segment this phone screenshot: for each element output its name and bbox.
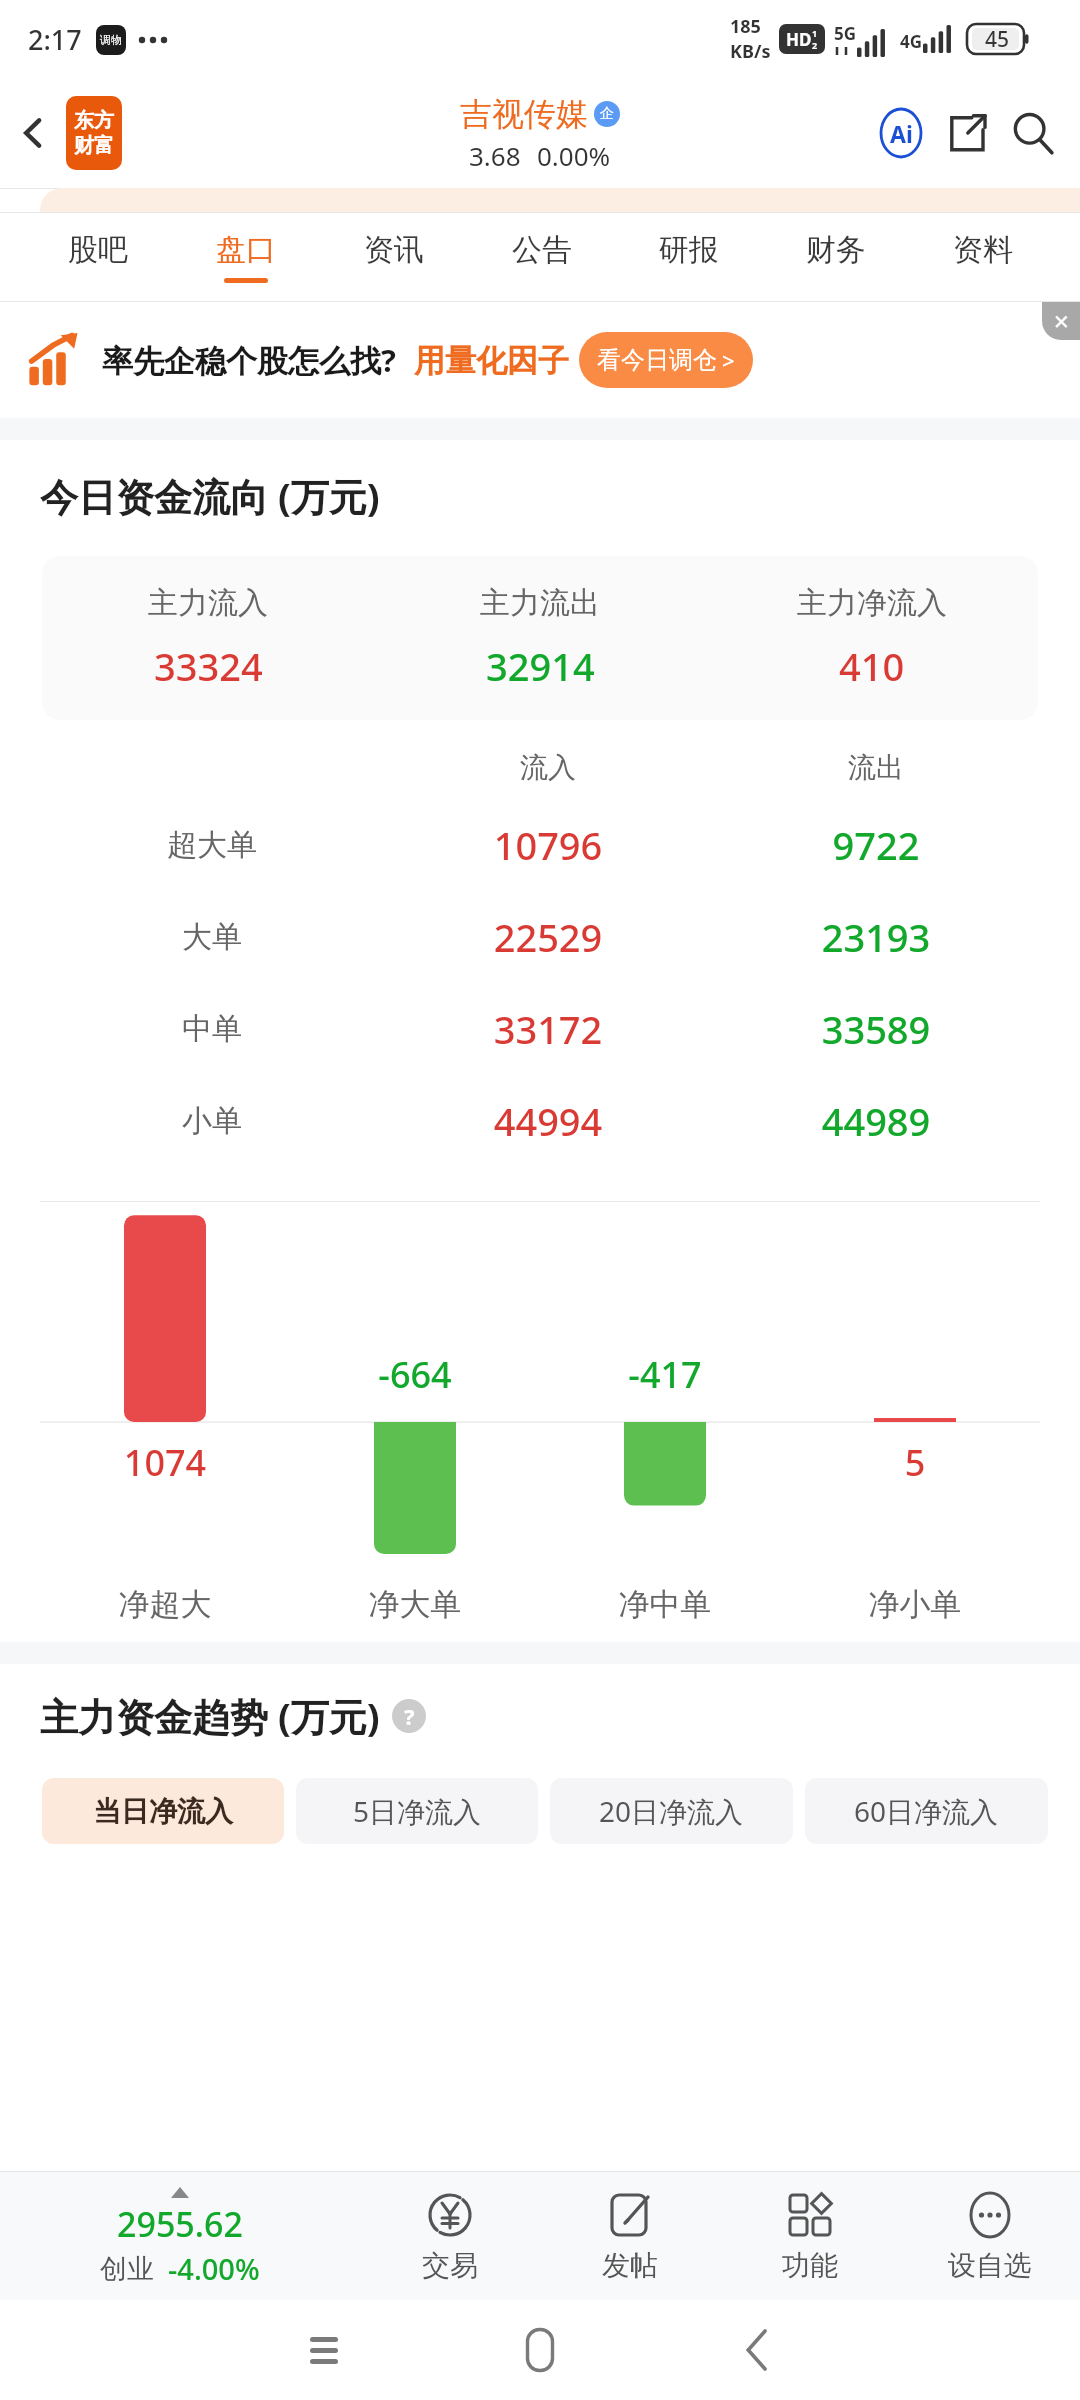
staticText: HD [786, 28, 812, 51]
button[interactable]: -664 [290, 1202, 540, 1642]
button[interactable]: 小单 [0, 1075, 1080, 1167]
staticText: > [722, 345, 735, 375]
staticText: 185 [730, 14, 761, 39]
staticText: 吉视传媒 [460, 94, 588, 134]
staticText: Ai [890, 118, 913, 149]
staticText: -664 [290, 1350, 540, 1399]
button[interactable]: 盘口 [172, 213, 320, 301]
button[interactable]: Recents [216, 2300, 432, 2400]
button[interactable]: 设自选 [900, 2172, 1080, 2300]
staticText: ? [404, 1701, 415, 1731]
staticText: 看今日调仓 [597, 345, 717, 375]
staticText: 功能 [782, 2248, 838, 2283]
button[interactable]: 超大单 [0, 799, 1080, 891]
staticText: 3.68 [469, 138, 521, 173]
staticText: 股吧 [68, 231, 128, 269]
button[interactable]: 2955.62 [0, 2172, 360, 2300]
staticText: 净超大 [40, 1585, 290, 1624]
staticText: 流入 [384, 750, 712, 785]
staticText: 44994 [384, 1095, 712, 1147]
button[interactable]: 大单 [0, 891, 1080, 983]
staticText: 研报 [659, 231, 719, 269]
staticText: 财富 [74, 133, 114, 158]
staticText: 9722 [712, 819, 1040, 871]
button[interactable]: Back [648, 2300, 864, 2400]
button[interactable]: Help [392, 1699, 426, 1733]
button[interactable]: 主力流入 [42, 584, 374, 692]
staticText: 5G [834, 22, 857, 45]
button[interactable]: Home [432, 2300, 648, 2400]
staticText: 当日净流入 [93, 1794, 233, 1829]
staticText: 44989 [712, 1095, 1040, 1147]
staticText: 2 [812, 39, 818, 51]
staticText: 33589 [712, 1003, 1040, 1055]
staticText: 20日净流入 [599, 1792, 744, 1830]
button[interactable]: East Money [66, 96, 122, 170]
staticText: 5日净流入 [353, 1792, 482, 1830]
button[interactable]: 60日净流入 [805, 1778, 1048, 1844]
staticText: 10796 [384, 819, 712, 871]
button[interactable]: 发帖 [540, 2172, 720, 2300]
button[interactable]: 主力净流入 [706, 584, 1038, 692]
staticText: 财务 [806, 231, 866, 269]
button[interactable]: Search [1000, 100, 1066, 166]
button[interactable]: 1074 [40, 1202, 290, 1642]
staticText: 盘口 [216, 231, 276, 269]
button[interactable]: Back [0, 100, 66, 166]
button[interactable]: 资讯 [320, 213, 468, 301]
button[interactable]: -417 [540, 1202, 790, 1642]
button[interactable]: 5日净流入 [296, 1778, 538, 1844]
staticText: 中单 [182, 1010, 242, 1048]
staticText: 调物 [100, 33, 122, 47]
staticText: 用量化因子 [414, 341, 569, 380]
staticText: 资讯 [364, 231, 424, 269]
staticText: 发帖 [602, 2248, 658, 2283]
staticText: -417 [540, 1350, 790, 1399]
staticText: 主力净流入 [797, 584, 947, 622]
staticText: 创业 [100, 2252, 154, 2286]
staticText: 2955.62 [117, 2201, 243, 2247]
button[interactable]: 5 [790, 1202, 1040, 1642]
staticText: 设自选 [948, 2248, 1032, 2283]
staticText: 主力流出 [480, 584, 600, 622]
button[interactable]: Share [934, 100, 1000, 166]
button[interactable]: 率先企稳个股怎么找? [0, 302, 1080, 418]
button[interactable]: 公告 [468, 213, 615, 301]
staticText: 资料 [953, 231, 1013, 269]
button[interactable]: 吉视传媒 [460, 94, 620, 173]
staticText: KB/s [730, 39, 771, 64]
button[interactable]: 主力流出 [374, 584, 706, 692]
button[interactable]: 股吧 [24, 213, 172, 301]
staticText: 流出 [712, 750, 1040, 785]
button[interactable]: AI assistant [868, 100, 934, 166]
staticText: 超大单 [167, 826, 257, 864]
staticText: 5 [790, 1438, 1040, 1487]
staticText: 企 [600, 105, 614, 123]
button[interactable]: 交易 [360, 2172, 540, 2300]
staticText: 主力资金趋势 (万元) [40, 1690, 380, 1742]
button[interactable]: 资料 [909, 213, 1056, 301]
button[interactable]: 当日净流入 [42, 1778, 284, 1844]
button[interactable]: 研报 [615, 213, 762, 301]
staticText: 32914 [486, 640, 595, 692]
staticText: 0.00% [537, 138, 611, 173]
staticText: 33324 [154, 640, 263, 692]
staticText: 交易 [422, 2248, 478, 2283]
staticText: 23193 [712, 911, 1040, 963]
staticText: 净中单 [540, 1585, 790, 1624]
staticText: 1074 [40, 1438, 290, 1487]
staticText: 今日资金流向 (万元) [40, 470, 380, 522]
staticText: 东方 [74, 108, 114, 133]
staticText: 4G [900, 30, 923, 53]
button[interactable]: 功能 [720, 2172, 900, 2300]
button[interactable]: 看今日调仓 [579, 332, 753, 388]
staticText: 公告 [512, 231, 572, 269]
button[interactable]: Close ad [1042, 302, 1080, 340]
staticText: 22529 [384, 911, 712, 963]
button[interactable]: 中单 [0, 983, 1080, 1075]
staticText: 主力流入 [148, 584, 268, 622]
button[interactable]: 20日净流入 [550, 1778, 793, 1844]
staticText: 2:17 [28, 21, 82, 58]
button[interactable]: 财务 [762, 213, 909, 301]
staticText: 大单 [182, 918, 242, 956]
